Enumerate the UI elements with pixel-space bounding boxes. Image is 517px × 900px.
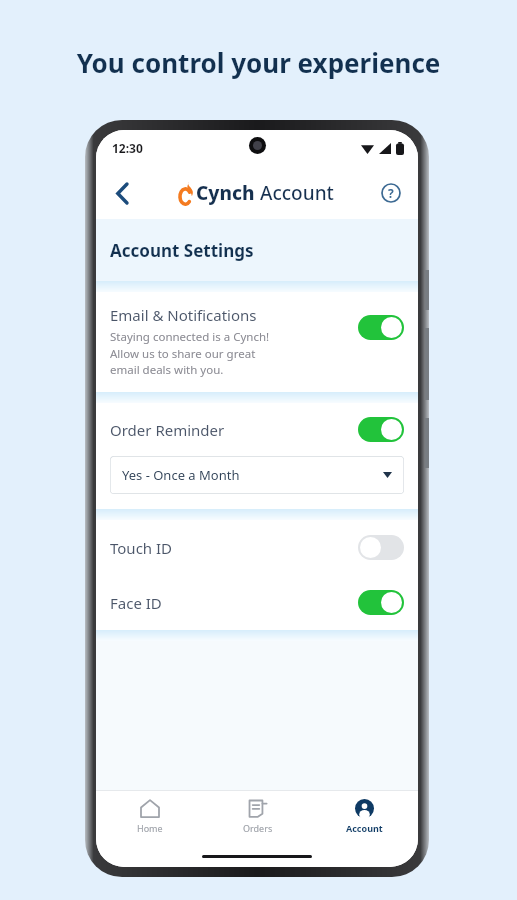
staticText: Face ID <box>110 593 358 613</box>
staticText: Order Reminder <box>110 420 358 440</box>
staticText: Account <box>260 180 334 206</box>
staticText: Email & Notifications <box>110 305 257 325</box>
staticText: ? <box>388 185 394 201</box>
button[interactable]: On <box>358 417 404 442</box>
button[interactable]: Touch ID <box>96 520 418 575</box>
button[interactable]: Off <box>358 535 404 560</box>
staticText: Account Settings <box>110 239 254 262</box>
button[interactable]: Back <box>101 173 141 213</box>
button[interactable]: Orders <box>204 791 311 845</box>
staticText: 12:30 <box>112 140 143 156</box>
button[interactable]: Account <box>311 791 418 845</box>
button[interactable]: Home <box>96 791 204 845</box>
staticText: Staying connected is a Cynch! Allow us t… <box>110 329 270 377</box>
staticText: Yes - Once a Month <box>122 466 383 484</box>
staticText: Home <box>137 822 163 834</box>
button[interactable]: Help <box>372 174 410 212</box>
staticText: You control your experience <box>0 45 517 80</box>
staticText: Orders <box>243 822 273 834</box>
button[interactable]: Face ID <box>96 575 418 630</box>
button[interactable]: On <box>358 590 404 615</box>
button[interactable]: Email & Notifications <box>96 292 418 392</box>
button[interactable]: Yes - Once a Month <box>110 456 404 494</box>
staticText: Account <box>346 822 383 834</box>
button[interactable]: Order Reminder <box>96 403 418 446</box>
staticText: Cynch <box>196 180 255 206</box>
staticText: Touch ID <box>110 538 358 558</box>
button[interactable]: On <box>358 315 404 340</box>
